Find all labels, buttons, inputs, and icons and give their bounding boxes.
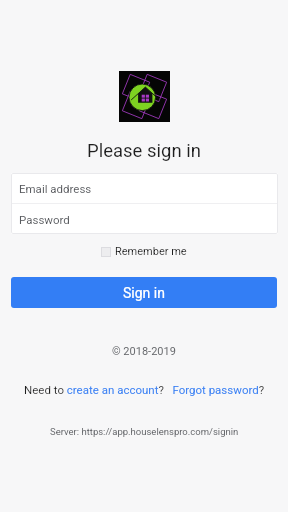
staticText: Password: [19, 213, 70, 226]
staticText: © 2018-2019: [112, 345, 176, 358]
button[interactable]: Password: [11, 204, 278, 234]
staticText: Remember me: [115, 245, 187, 258]
button[interactable]: Sign in: [11, 277, 277, 308]
button[interactable]: Email address: [11, 173, 278, 203]
staticText: Email address: [19, 182, 92, 195]
button[interactable]: Need to create an account? Forgot passwo…: [24, 383, 265, 396]
staticText: Sign in: [123, 285, 165, 301]
button[interactable]: Remember me: [101, 245, 187, 258]
staticText: Server: https://app.houselenspro.com/sig…: [50, 426, 239, 437]
staticText: Please sign in: [87, 140, 201, 162]
